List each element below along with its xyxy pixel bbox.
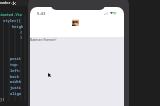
staticText: back (10, 74, 19, 79)
staticText: top: (10, 62, 19, 67)
staticText: ( (20, 30, 23, 35)
staticText: left: (10, 68, 22, 73)
staticText: posit (10, 56, 22, 61)
staticText: }) (0, 97, 5, 102)
staticText: style={{ (3, 18, 21, 23)
staticText: heigh (12, 24, 24, 29)
staticText: align (10, 91, 22, 96)
staticText: Batman Forever! (30, 37, 57, 42)
staticText: imated.Vie (0, 12, 23, 17)
staticText: ) (20, 35, 23, 40)
button[interactable]: Close tab (12, 0, 16, 6)
staticText: width (10, 79, 22, 84)
staticText: 5:43 (37, 11, 46, 17)
staticText: eader.js (0, 0, 15, 6)
button[interactable]: eader.js (0, 0, 15, 6)
staticText: justi (10, 85, 22, 90)
